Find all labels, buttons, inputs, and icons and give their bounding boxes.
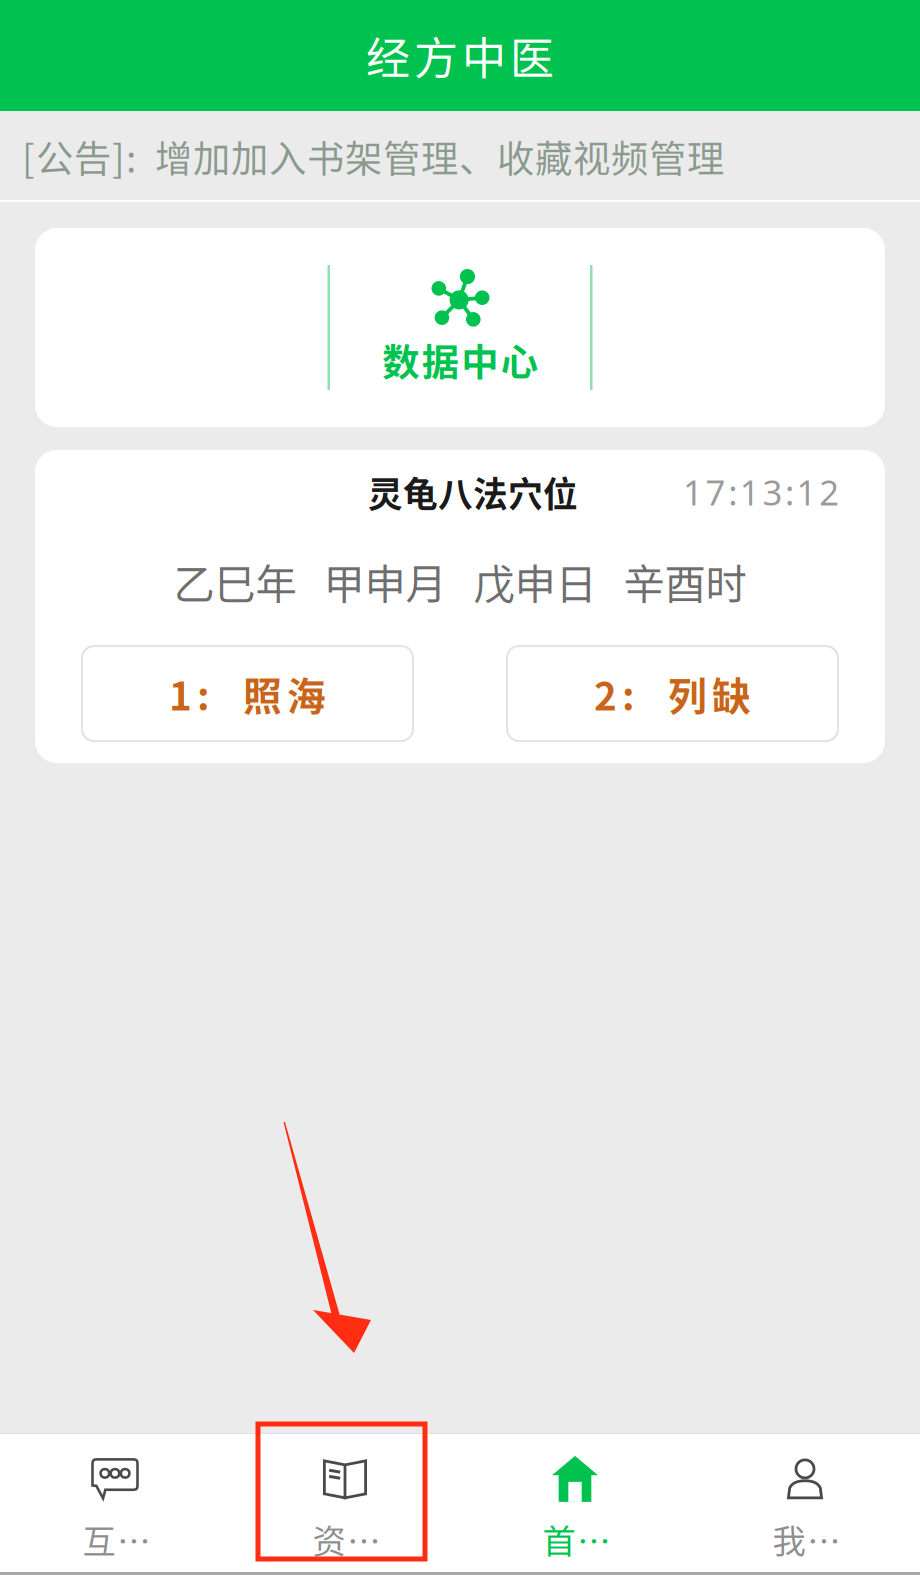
staticText: [公告]: 增加加入书架管理、收藏视频管理: [22, 129, 724, 184]
button[interactable]: 首页: [460, 1433, 690, 1575]
staticText: 我的: [773, 1515, 842, 1563]
staticText: 1: 照海: [169, 666, 326, 722]
button[interactable]: 互动: [0, 1433, 230, 1575]
staticText: 乙巳年 甲申月 戊申日 辛酉时: [173, 551, 746, 611]
button[interactable]: 资料: [230, 1433, 460, 1575]
button[interactable]: 1: 照海: [82, 646, 413, 741]
staticText: 经方中医: [366, 24, 554, 87]
staticText: 数据中心: [382, 333, 538, 387]
staticText: 互动: [83, 1515, 152, 1563]
staticText: 17:13:12: [683, 469, 839, 515]
button[interactable]: 2: 列缺: [507, 646, 838, 741]
staticText: 首页: [543, 1515, 612, 1563]
staticText: 2: 列缺: [594, 666, 751, 722]
staticText: 灵龟八法穴位: [368, 467, 578, 517]
button[interactable]: 我的: [690, 1433, 920, 1575]
staticText: 资料: [313, 1515, 382, 1563]
